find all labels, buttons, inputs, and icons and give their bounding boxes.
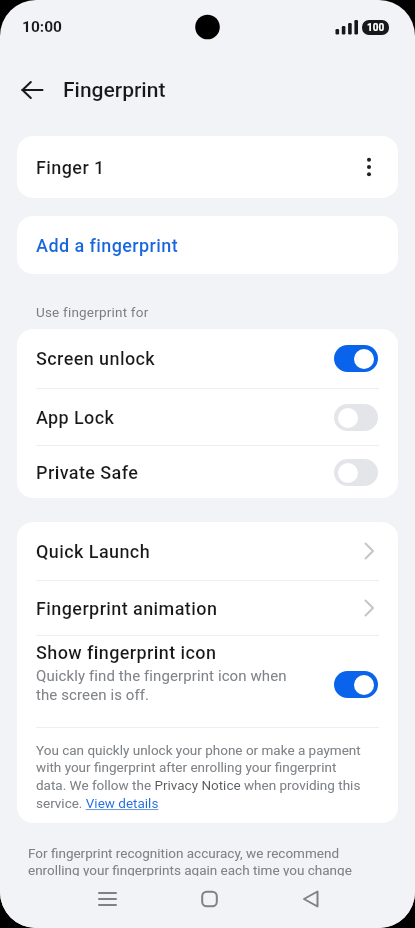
staticText: You can quickly unlock your phone or mak…	[36, 742, 361, 812]
staticText: Fingerprint animation	[36, 598, 362, 619]
button[interactable]	[334, 459, 378, 486]
staticText: Private Safe	[36, 462, 334, 483]
staticText: For fingerprint recognition accuracy, we…	[28, 845, 352, 879]
button[interactable]: App Lock	[17, 389, 398, 445]
button[interactable]	[334, 345, 378, 372]
staticText: 10:00	[22, 18, 62, 36]
button[interactable]: Finger 1	[17, 136, 398, 198]
button[interactable]	[277, 876, 415, 928]
staticText: Finger 1	[36, 157, 105, 178]
button[interactable]	[0, 876, 139, 928]
button[interactable]	[139, 876, 277, 928]
button[interactable]	[22, 81, 43, 99]
staticText: 100	[367, 22, 385, 34]
button[interactable]	[357, 155, 381, 179]
button[interactable]: Add a fingerprint	[17, 216, 398, 274]
staticText: Screen unlock	[36, 348, 334, 369]
staticText: Fingerprint	[63, 78, 166, 103]
staticText: Add a fingerprint	[36, 235, 179, 256]
button[interactable]: Show fingerprint icon	[36, 642, 378, 703]
staticText: Quick Launch	[36, 541, 362, 562]
button[interactable]	[334, 404, 378, 431]
button[interactable]: Fingerprint animation	[17, 581, 398, 635]
button[interactable]	[334, 671, 378, 698]
staticText: App Lock	[36, 407, 334, 428]
staticText: Quickly find the fingerprint icon when t…	[36, 667, 287, 703]
staticText: Use fingerprint for	[36, 304, 149, 320]
staticText: Show fingerprint icon	[36, 642, 217, 663]
button[interactable]: Quick Launch	[17, 522, 398, 580]
button[interactable]: Screen unlock	[17, 329, 398, 388]
button[interactable]: Private Safe	[17, 446, 398, 498]
